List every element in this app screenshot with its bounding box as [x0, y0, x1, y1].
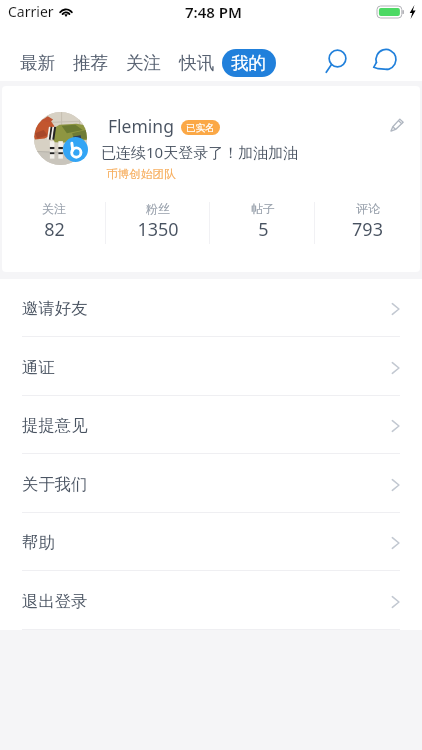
staticText: 邀请好友 [22, 298, 88, 319]
button[interactable]: 退出登录 [0, 572, 422, 629]
button[interactable]: 推荐 [73, 49, 109, 77]
staticText: 1350 [137, 217, 179, 242]
button[interactable]: 最新 [20, 49, 56, 77]
button[interactable]: 帮助 [0, 513, 422, 570]
staticText: 关注 [126, 52, 162, 74]
button[interactable]: 我的 [222, 49, 276, 77]
staticText: 7:48 PM [185, 2, 242, 22]
staticText: 5 [258, 217, 269, 242]
staticText: 关于我们 [22, 474, 88, 495]
staticText: 已连续10天登录了！加油加油 [101, 142, 299, 162]
staticText: 82 [44, 217, 65, 242]
button[interactable]: Edit profile [385, 113, 409, 137]
staticText: Fleming [108, 114, 174, 138]
button[interactable]: 关注 [126, 49, 162, 77]
staticText: 已实名 [186, 122, 215, 134]
button[interactable]: 通证 [0, 338, 422, 395]
staticText: 帮助 [22, 532, 55, 553]
staticText: 最新 [20, 52, 56, 74]
staticText: 帖子 [251, 201, 275, 216]
button[interactable]: 快讯 [179, 49, 215, 77]
staticText: 币博创始团队 [106, 167, 176, 182]
staticText: 793 [352, 217, 383, 242]
staticText: 退出登录 [22, 591, 88, 612]
button[interactable]: 邀请好友 [0, 279, 422, 336]
staticText: 推荐 [73, 52, 109, 74]
button[interactable]: 关于我们 [0, 455, 422, 512]
staticText: 评论 [356, 201, 380, 216]
button[interactable]: Search [320, 46, 350, 76]
staticText: 关注 [42, 201, 66, 216]
staticText: 快讯 [179, 52, 215, 74]
staticText: 我的 [231, 52, 267, 74]
button[interactable]: 提提意见 [0, 396, 422, 453]
button[interactable]: Messages [368, 46, 398, 76]
staticText: 通证 [22, 357, 55, 378]
staticText: 粉丝 [146, 201, 170, 216]
staticText: 提提意见 [22, 415, 88, 436]
staticText: Carrier [8, 2, 54, 21]
